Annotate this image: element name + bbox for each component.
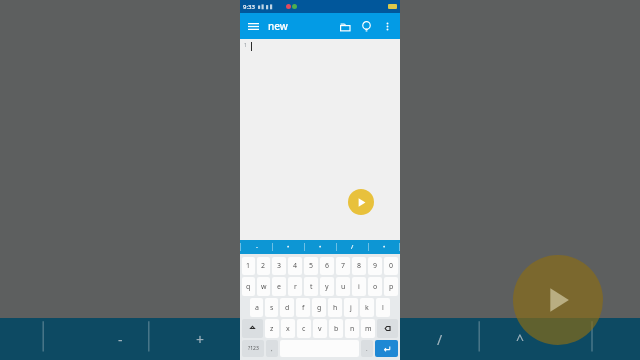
button[interactable]: / — [400, 318, 480, 360]
staticText: 2 — [261, 261, 266, 271]
staticText: b — [334, 324, 339, 334]
staticText: q — [246, 282, 251, 292]
button[interactable]: Menu — [246, 19, 260, 33]
staticText: 8 — [357, 261, 362, 271]
button[interactable]: Enter — [375, 340, 398, 357]
other: Play — [513, 255, 603, 345]
button[interactable]: 9 — [368, 257, 382, 275]
button[interactable]: Control — [0, 318, 80, 360]
button[interactable]: More options — [380, 19, 394, 33]
button[interactable]: Backspace — [377, 319, 398, 338]
staticText: 4 — [293, 261, 298, 271]
staticText: p — [389, 282, 394, 292]
staticText: h — [333, 303, 338, 313]
button[interactable]: ?123 — [242, 340, 264, 357]
button[interactable]: / — [336, 240, 368, 254]
staticText: / — [351, 243, 354, 251]
button[interactable]: n — [345, 319, 359, 338]
staticText: 5 — [309, 261, 314, 271]
button[interactable]: Shift — [242, 319, 263, 338]
staticText: v — [318, 324, 322, 334]
button[interactable]: f — [296, 298, 310, 317]
button[interactable]: , — [266, 340, 278, 357]
button[interactable]: z — [265, 319, 279, 338]
button[interactable]: 6 — [320, 257, 334, 275]
staticText: x — [286, 324, 290, 334]
button[interactable]: 0 — [384, 257, 398, 275]
button[interactable]: g — [312, 298, 326, 317]
button[interactable]: s — [265, 298, 278, 317]
staticText: f — [302, 303, 305, 313]
button[interactable]: d — [280, 298, 294, 317]
button[interactable]: 7 — [336, 257, 350, 275]
button[interactable]: 4 — [288, 257, 302, 275]
button[interactable]: r — [288, 277, 302, 296]
button[interactable]: x — [281, 319, 295, 338]
staticText: new — [268, 19, 288, 33]
button[interactable]: • — [304, 240, 336, 254]
button[interactable]: l — [376, 298, 390, 317]
button[interactable]: k — [360, 298, 374, 317]
staticText: 6 — [325, 261, 330, 271]
button[interactable]: u — [336, 277, 350, 296]
button[interactable]: e — [272, 277, 286, 296]
staticText: d — [285, 303, 290, 313]
staticText: - — [118, 330, 123, 349]
button[interactable]: j — [344, 298, 358, 317]
staticText: o — [373, 282, 378, 292]
button[interactable]: 5 — [304, 257, 318, 275]
staticText: s — [270, 303, 274, 313]
staticText: l — [382, 303, 384, 313]
staticText: 1 — [246, 261, 251, 271]
button[interactable]: Open folder — [338, 19, 352, 33]
button[interactable]: + — [160, 318, 240, 360]
button[interactable]: 3 — [272, 257, 286, 275]
staticText: 0 — [389, 261, 394, 271]
staticText: w — [261, 282, 267, 292]
button[interactable]: . — [361, 340, 373, 357]
button[interactable]: t — [304, 277, 318, 296]
button[interactable]: - — [240, 240, 272, 254]
staticText: c — [302, 324, 306, 334]
button[interactable]: • — [272, 240, 304, 254]
staticText: g — [317, 303, 322, 313]
button[interactable]: ^ — [480, 318, 560, 360]
staticText: k — [365, 303, 369, 313]
staticText: 1 — [244, 42, 247, 49]
button[interactable]: v — [313, 319, 327, 338]
button[interactable]: a — [250, 298, 263, 317]
button[interactable]: • — [368, 240, 400, 254]
staticText: • — [287, 243, 290, 251]
button[interactable]: p — [384, 277, 398, 296]
button[interactable]: - — [80, 318, 160, 360]
button[interactable]: Hints — [359, 19, 373, 33]
staticText: u — [341, 282, 346, 292]
staticText: 9:33 — [243, 3, 255, 11]
staticText: - — [256, 243, 258, 251]
button[interactable]: y — [320, 277, 334, 296]
button[interactable]: m — [361, 319, 375, 338]
staticText: y — [325, 282, 329, 292]
staticText: . — [366, 345, 368, 353]
staticText: + — [196, 330, 205, 349]
button[interactable]: Control — [560, 318, 640, 360]
staticText: e — [277, 282, 281, 292]
button[interactable]: 2 — [257, 257, 270, 275]
button[interactable]: w — [257, 277, 270, 296]
button[interactable]: i — [352, 277, 366, 296]
staticText: 9 — [373, 261, 378, 271]
button[interactable]: 1 — [242, 257, 255, 275]
button[interactable]: o — [368, 277, 382, 296]
button[interactable]: c — [297, 319, 311, 338]
button[interactable]: b — [329, 319, 343, 338]
button[interactable]: q — [242, 277, 255, 296]
button[interactable]: h — [328, 298, 342, 317]
staticText: 7 — [341, 261, 346, 271]
button[interactable]: Run — [348, 189, 374, 215]
staticText: j — [350, 303, 352, 313]
staticText: n — [350, 324, 355, 334]
button[interactable]: 8 — [352, 257, 366, 275]
staticText: / — [437, 330, 443, 349]
staticText: r — [294, 282, 297, 292]
